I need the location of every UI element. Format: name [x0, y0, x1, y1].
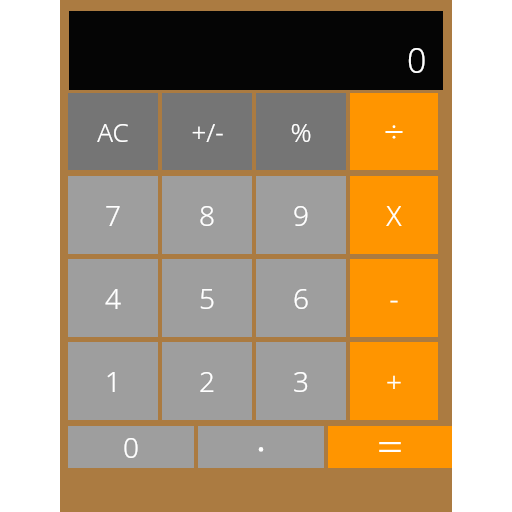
- button[interactable]: 8: [162, 176, 252, 254]
- staticText: 3: [293, 362, 309, 400]
- button[interactable]: 3: [256, 342, 346, 420]
- button[interactable]: Decimal point: [198, 426, 324, 468]
- staticText: 1: [105, 362, 121, 400]
- button[interactable]: AC: [68, 93, 158, 170]
- button[interactable]: 0: [68, 426, 194, 468]
- button[interactable]: 4: [68, 259, 158, 337]
- button[interactable]: Divide: [350, 93, 438, 170]
- staticText: 2: [199, 362, 215, 400]
- staticText: 7: [105, 196, 121, 234]
- staticText: +/-: [191, 114, 224, 149]
- button[interactable]: 5: [162, 259, 252, 337]
- button[interactable]: 6: [256, 259, 346, 337]
- staticText: 0: [407, 37, 427, 83]
- button[interactable]: 7: [68, 176, 158, 254]
- button[interactable]: +/-: [162, 93, 252, 170]
- button[interactable]: Equals: [328, 426, 452, 468]
- button[interactable]: Multiply: [350, 176, 438, 254]
- button[interactable]: Minus: [350, 259, 438, 337]
- staticText: 9: [293, 196, 309, 234]
- staticText: -: [389, 279, 399, 317]
- button[interactable]: 2: [162, 342, 252, 420]
- staticText: X: [386, 196, 402, 234]
- button[interactable]: %: [256, 93, 346, 170]
- button[interactable]: 9: [256, 176, 346, 254]
- staticText: 4: [105, 279, 121, 317]
- staticText: +: [386, 362, 402, 400]
- button[interactable]: Plus: [350, 342, 438, 420]
- staticText: 5: [199, 279, 215, 317]
- staticText: 0: [123, 428, 139, 466]
- button[interactable]: 1: [68, 342, 158, 420]
- staticText: 6: [293, 279, 309, 317]
- staticText: AC: [97, 114, 129, 149]
- staticText: 8: [199, 196, 215, 234]
- staticText: %: [290, 114, 312, 149]
